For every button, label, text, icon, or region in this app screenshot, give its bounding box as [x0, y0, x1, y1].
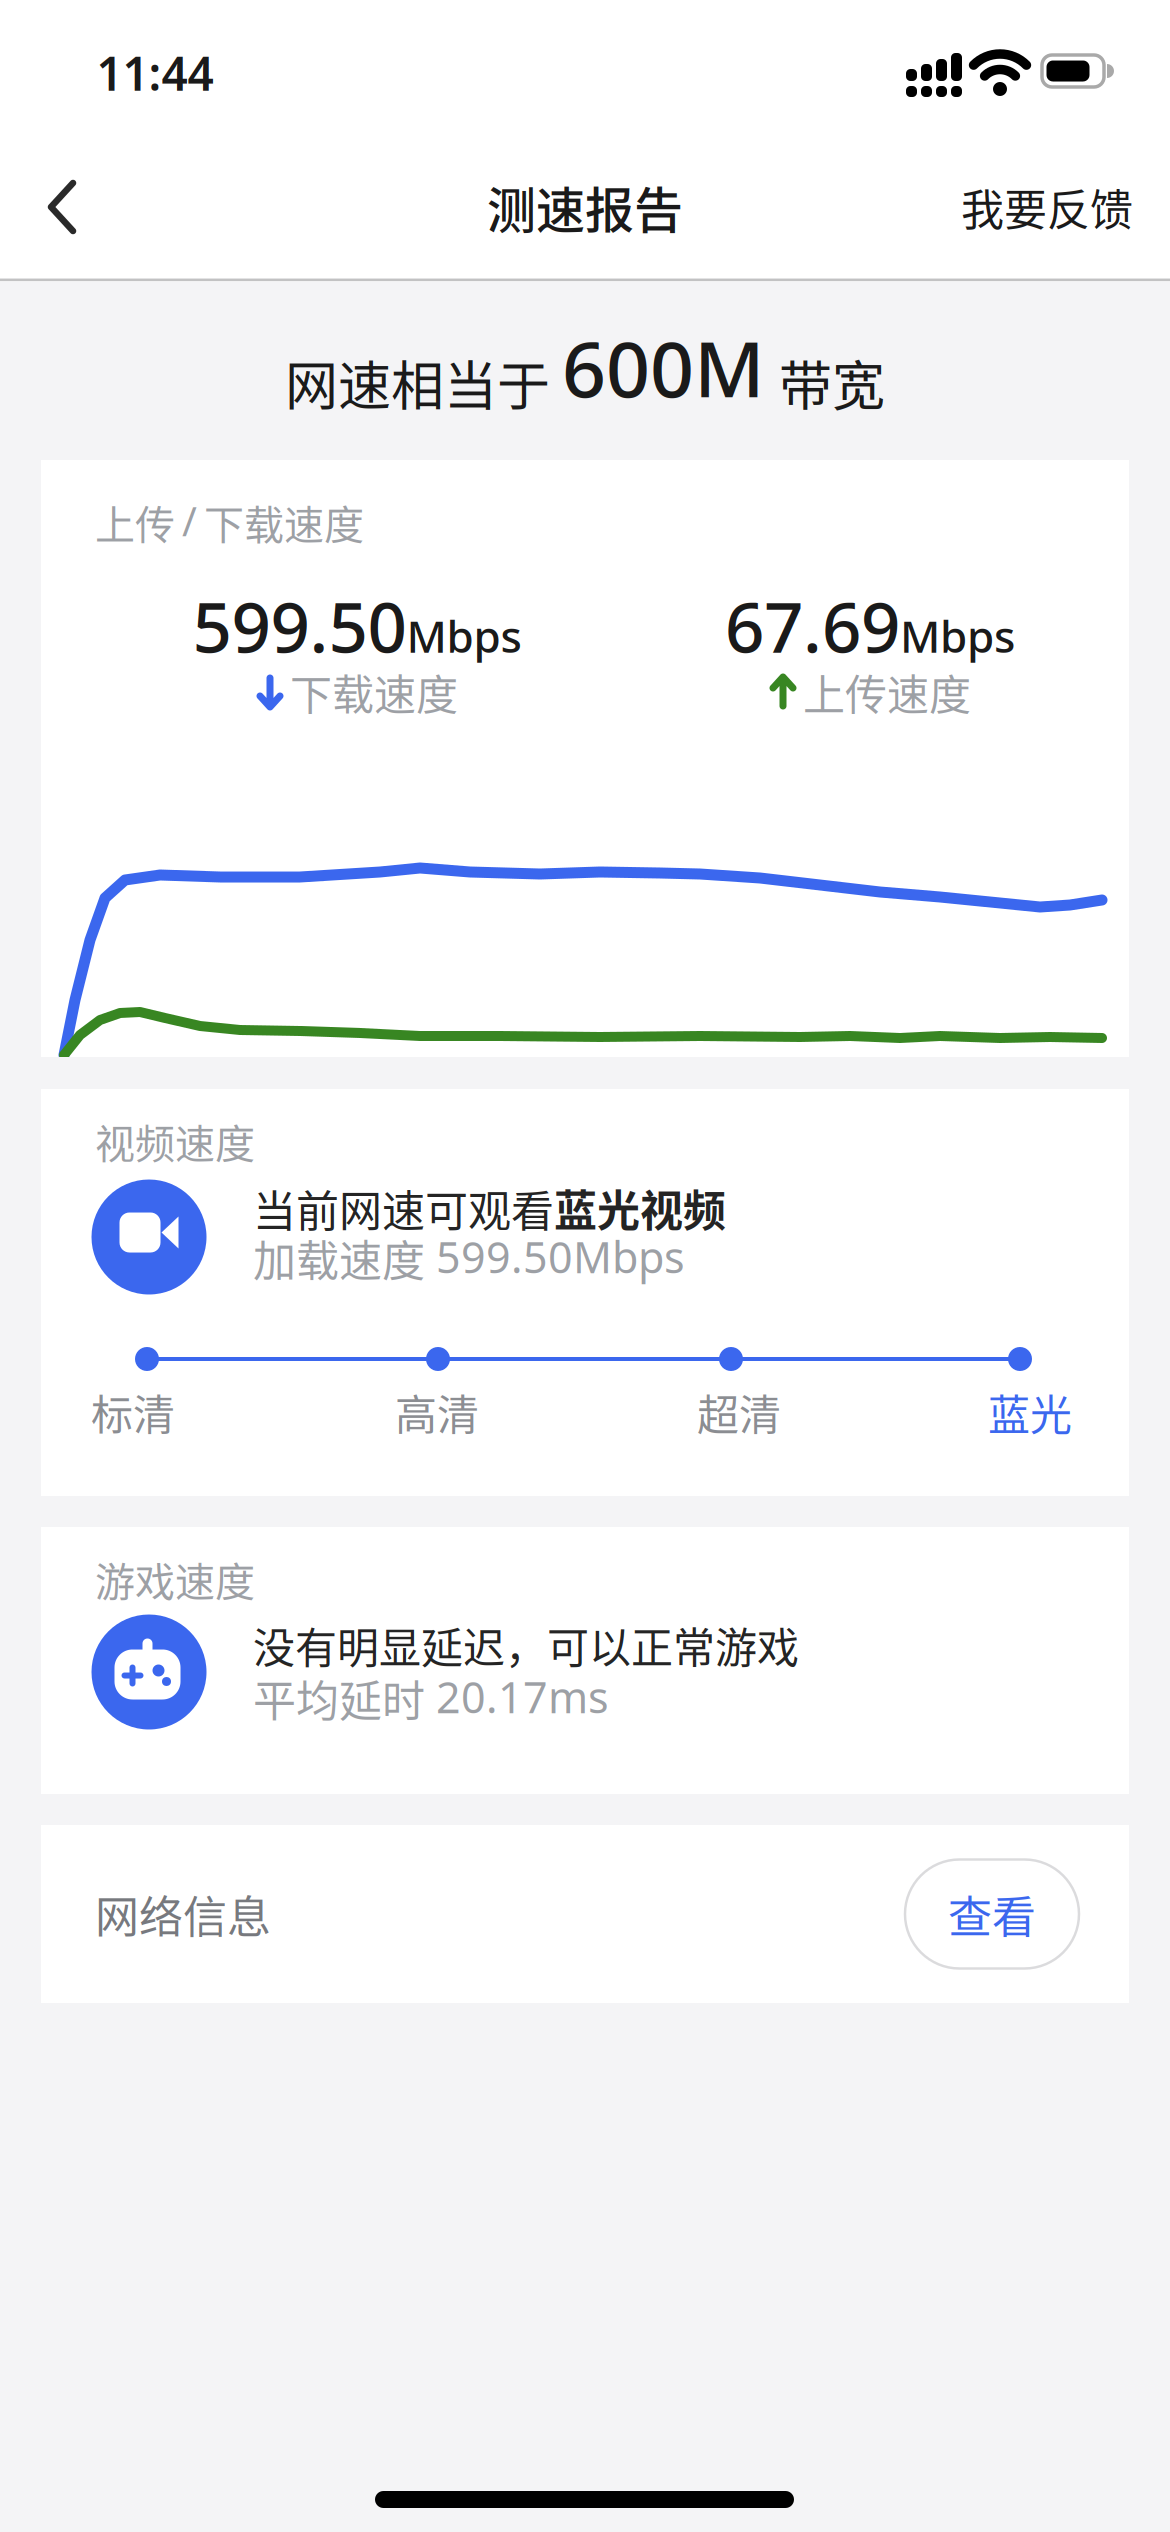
staticText: 游戏速度 — [95, 1550, 255, 1608]
staticText: 上传速度 — [803, 662, 971, 722]
staticText: 没有明显延迟，可以正常游戏 — [253, 1615, 799, 1675]
button[interactable]: 我要反馈 — [961, 176, 1133, 238]
staticText: 11:44 — [96, 42, 213, 104]
staticText: 599.50Mbps — [192, 580, 521, 672]
staticText: 67.69Mbps — [725, 580, 1015, 672]
staticText: 当前网速可观看蓝光视频 — [253, 1177, 726, 1239]
button[interactable]: 返回 — [39, 179, 85, 235]
staticText: 上传 / 下载速度 — [95, 493, 364, 551]
button[interactable]: 查看 — [905, 1859, 1079, 1968]
staticText: 下载速度 — [290, 662, 458, 722]
staticText: 超清 — [697, 1382, 781, 1442]
staticText: 网络信息 — [95, 1882, 271, 1946]
staticText: 网速相当于 600M 带宽 — [285, 316, 885, 420]
staticText: 视频速度 — [95, 1112, 255, 1170]
staticText: 蓝光 — [988, 1382, 1072, 1442]
staticText: 平均延时 20.17ms — [253, 1667, 609, 1729]
staticText: 加载速度 599.50Mbps — [253, 1227, 685, 1289]
staticText: 高清 — [395, 1382, 479, 1442]
staticText: 标清 — [91, 1382, 175, 1442]
staticText: 我要反馈 — [961, 176, 1133, 238]
staticText: 查看 — [948, 1882, 1036, 1946]
staticText: 测速报告 — [487, 171, 683, 242]
